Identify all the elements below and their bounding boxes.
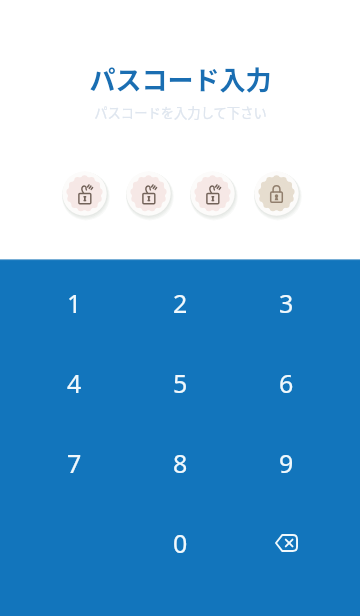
button[interactable]: 0 xyxy=(127,503,233,583)
button[interactable]: Locked xyxy=(253,170,300,217)
staticText: 6 xyxy=(279,366,294,400)
button[interactable]: Unlocked xyxy=(189,170,236,217)
button[interactable]: 5 xyxy=(127,343,233,423)
staticText: 2 xyxy=(173,286,188,320)
staticText: 8 xyxy=(173,446,188,480)
staticText: パスコードを入力して下さい xyxy=(94,103,267,122)
button[interactable]: 1 xyxy=(21,263,127,343)
button[interactable]: 6 xyxy=(233,343,339,423)
staticText: 0 xyxy=(173,526,188,560)
button[interactable]: Unlocked xyxy=(61,170,108,217)
staticText: 3 xyxy=(279,286,294,320)
button[interactable]: 2 xyxy=(127,263,233,343)
button[interactable]: 3 xyxy=(233,263,339,343)
staticText: 7 xyxy=(67,446,82,480)
staticText: 1 xyxy=(67,286,82,320)
button[interactable]: 8 xyxy=(127,423,233,503)
button[interactable]: 7 xyxy=(21,423,127,503)
staticText: 9 xyxy=(279,446,294,480)
button[interactable]: Unlocked xyxy=(125,170,172,217)
button[interactable]: 4 xyxy=(21,343,127,423)
button[interactable]: Backspace xyxy=(233,503,339,583)
staticText: 5 xyxy=(173,366,188,400)
staticText: 4 xyxy=(67,366,82,400)
button[interactable]: 9 xyxy=(233,423,339,503)
staticText: パスコード入力 xyxy=(89,60,272,98)
